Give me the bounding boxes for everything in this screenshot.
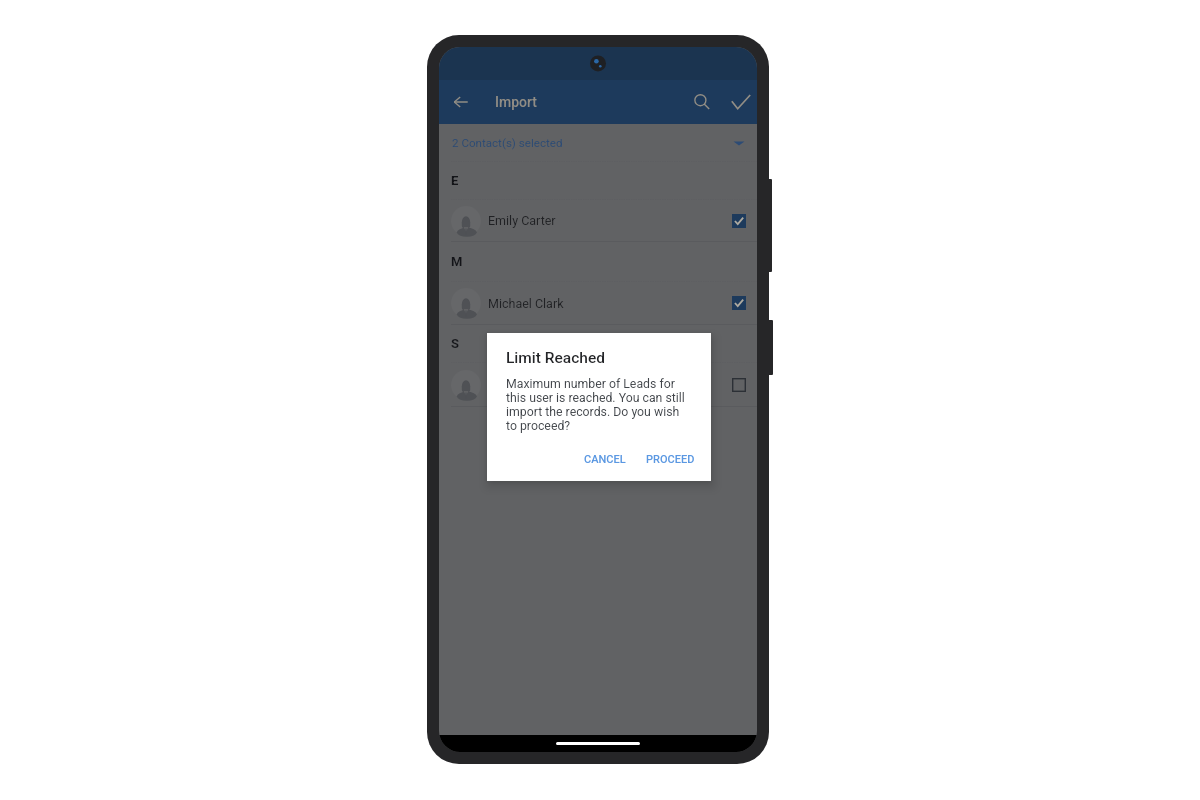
staticText: Michael Clark [488,296,564,311]
button[interactable]: 2 Contact(s) selected [439,124,757,161]
staticText: CANCEL [584,453,626,466]
button[interactable]: PROCEED [641,448,700,471]
staticText: M [451,254,463,269]
button[interactable]: Emily Carter [439,200,757,241]
staticText: Limit Reached [506,349,605,367]
staticText: Import [495,94,537,110]
button[interactable]: Michael Clark [439,282,757,324]
button[interactable]: CANCEL [579,448,631,471]
staticText: 2 Contact(s) selected [452,136,563,150]
button[interactable]: Search [680,80,724,124]
staticText: S [451,336,460,351]
staticText: Sarah Johnson [488,377,572,392]
staticText: PROCEED [646,453,695,466]
button[interactable]: Navigate back [439,80,483,124]
button[interactable]: Sarah Johnson [439,363,757,406]
button[interactable]: Confirm import [724,80,757,124]
staticText: Emily Carter [488,213,556,228]
staticText: E [451,173,459,188]
staticText: Maximum number of Leads for this user is… [506,377,687,433]
